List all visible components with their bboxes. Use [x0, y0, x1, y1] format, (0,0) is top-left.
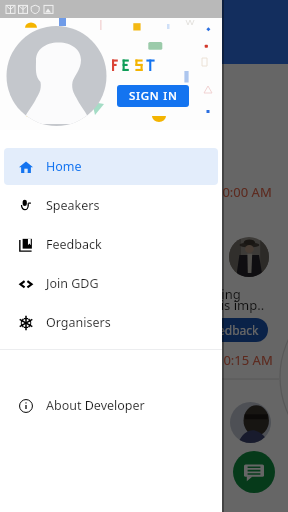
- staticText: Home: [46, 158, 82, 175]
- button[interactable]: Feedback: [196, 318, 268, 342]
- staticText: 10:00 AM: [215, 183, 272, 201]
- staticText: Join GDG: [46, 275, 99, 292]
- button[interactable]: Join GDG: [4, 265, 218, 302]
- staticText: Feedback: [46, 236, 102, 253]
- button[interactable]: SIGN IN: [117, 85, 189, 107]
- staticText: Feedback: [205, 322, 259, 338]
- staticText: being: [206, 285, 241, 303]
- button[interactable]: Chat: [233, 451, 275, 493]
- staticText: Speakers: [46, 197, 100, 214]
- staticText: 10:15 AM: [216, 351, 273, 369]
- staticText: SIGN IN: [129, 88, 178, 104]
- staticText: l is imp..: [214, 296, 265, 314]
- button[interactable]: Home: [4, 148, 218, 185]
- staticText: Organisers: [46, 314, 111, 331]
- button[interactable]: Speakers: [4, 187, 218, 224]
- button[interactable]: Feedback: [4, 226, 218, 263]
- button[interactable]: About Developer: [4, 387, 218, 424]
- button[interactable]: Organisers: [4, 304, 218, 341]
- staticText: About Developer: [46, 397, 145, 414]
